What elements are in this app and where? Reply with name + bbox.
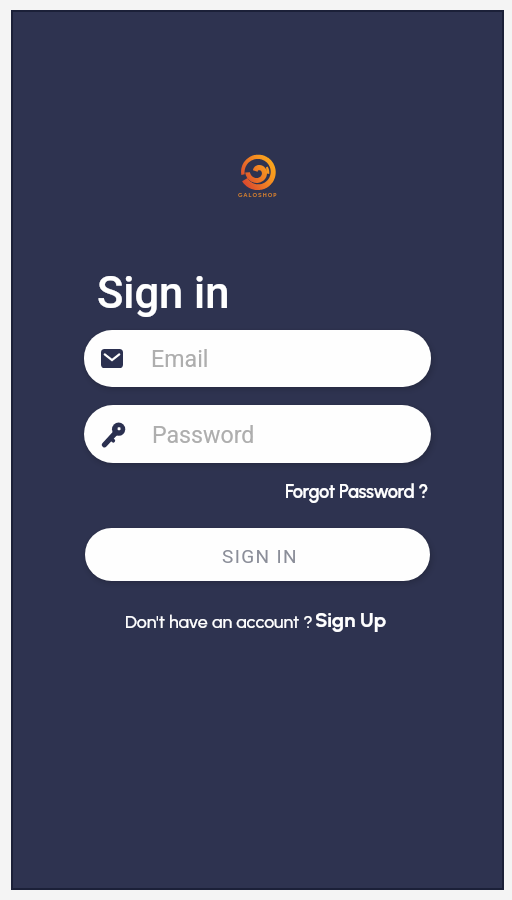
staticText: Password: [152, 421, 255, 448]
button[interactable]: Email: [84, 330, 431, 387]
button[interactable]: Password: [84, 405, 431, 463]
button[interactable]: Forgot Password ?: [285, 481, 429, 503]
staticText: SIGN IN: [222, 545, 298, 567]
button[interactable]: Sign Up: [315, 608, 387, 632]
staticText: Email: [151, 345, 209, 372]
button[interactable]: SIGN IN: [85, 528, 430, 581]
other: Email: [101, 349, 123, 368]
staticText: GALOSHOP: [238, 191, 278, 198]
other: Password: [102, 421, 127, 448]
staticText: Sign in: [97, 268, 230, 319]
staticText: Don't have an account ?: [125, 611, 313, 632]
